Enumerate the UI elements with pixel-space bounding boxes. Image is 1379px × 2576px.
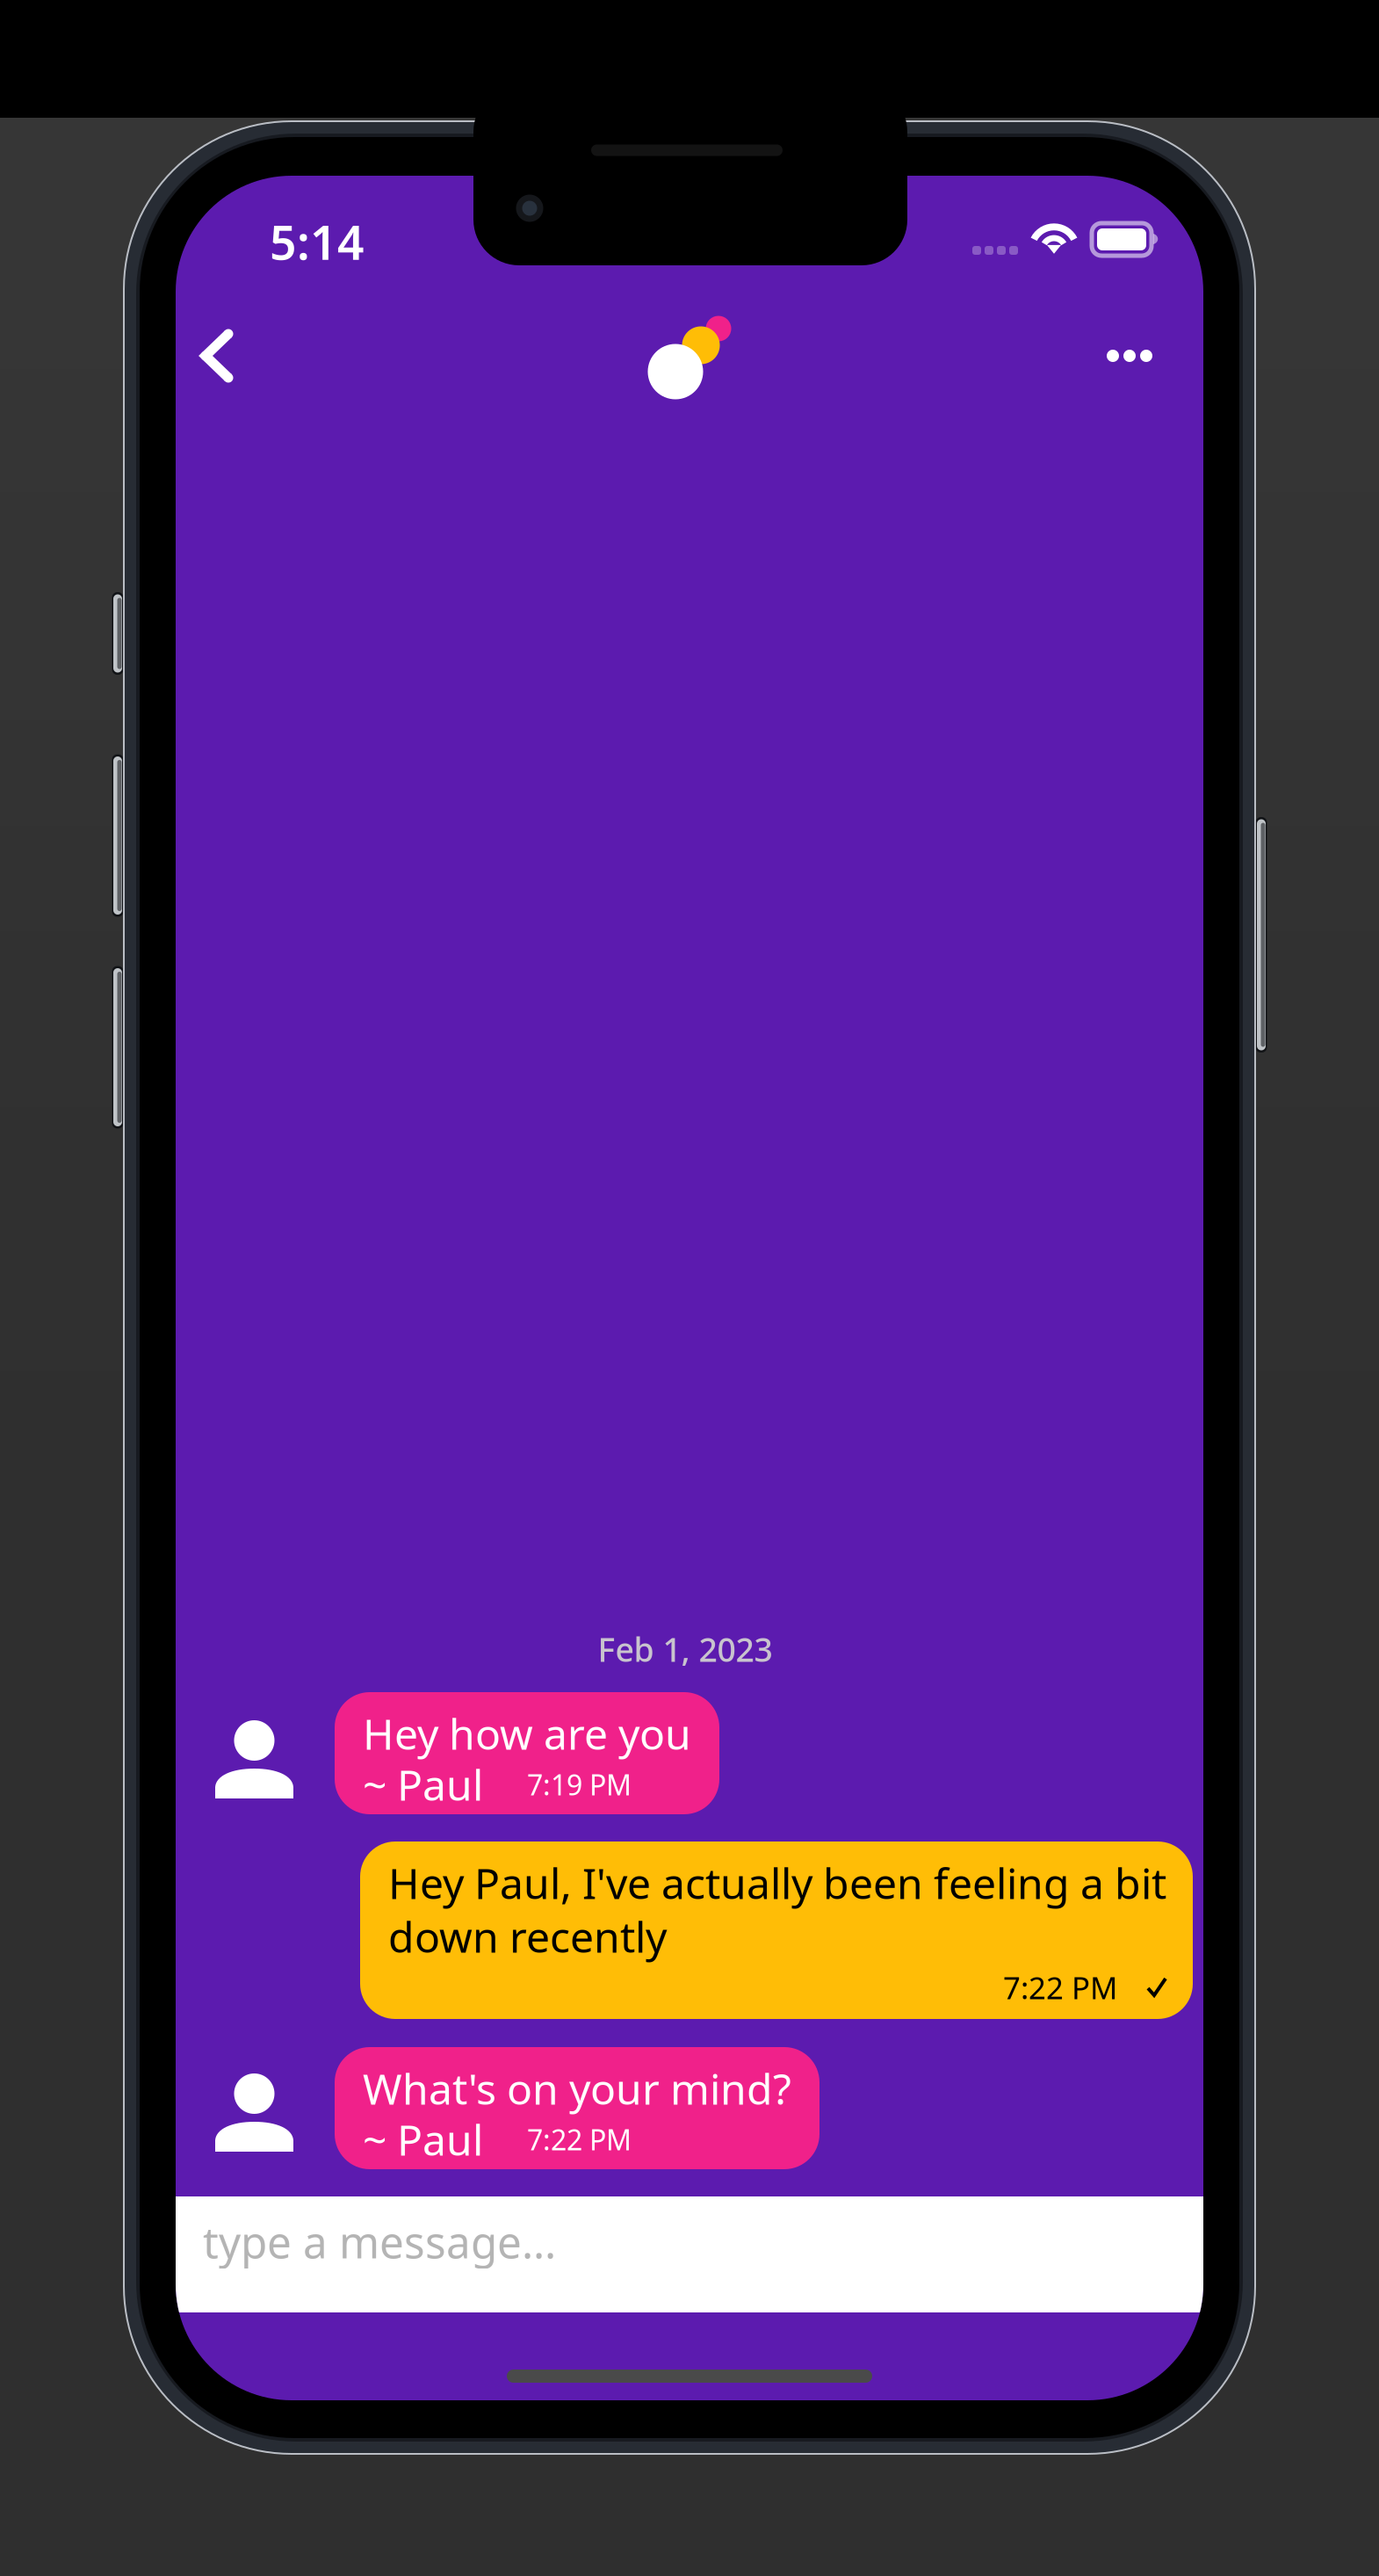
staticText: 7:22 PM <box>1003 1967 1117 2008</box>
staticText: Feb 1, 2023 <box>598 1627 773 1671</box>
staticText: type a message... <box>203 2213 556 2270</box>
button[interactable]: Back <box>160 299 274 413</box>
staticText: 5:14 <box>270 211 365 273</box>
staticText: 7:19 PM <box>527 1766 632 1803</box>
button[interactable]: type a message... <box>176 2196 1203 2312</box>
staticText: What's on your mind? <box>363 2060 791 2116</box>
staticText: Hey how are you <box>363 1705 691 1761</box>
staticText: Hey Paul, I've actually been feeling a b… <box>388 1855 1166 1911</box>
staticText: 7:22 PM <box>527 2121 632 2158</box>
staticText: ~ Paul <box>363 2111 483 2167</box>
staticText: down recently <box>388 1908 667 1964</box>
staticText: ~ Paul <box>363 1756 483 1812</box>
button[interactable]: More options <box>1072 299 1187 413</box>
